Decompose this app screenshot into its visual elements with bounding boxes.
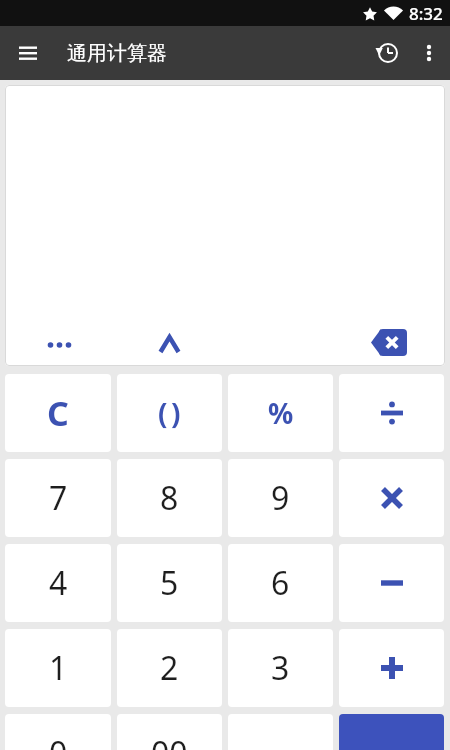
button[interactable]: 3 [228, 629, 333, 707]
button[interactable] [374, 40, 400, 66]
staticText: % [268, 394, 294, 432]
button[interactable]: 4 [5, 544, 111, 622]
staticText: 通用计算器 [67, 41, 167, 66]
staticText: ) [171, 394, 181, 432]
button[interactable]: ( [117, 374, 222, 452]
staticText: 8 [160, 476, 179, 520]
staticText: C [47, 390, 69, 436]
button[interactable]: 7 [5, 459, 111, 537]
staticText: 3 [271, 646, 290, 690]
button[interactable] [421, 39, 437, 67]
button[interactable] [339, 374, 444, 452]
staticText: 00 [151, 731, 188, 750]
button[interactable]: 6 [228, 544, 333, 622]
button[interactable]: 0 [5, 714, 111, 750]
button[interactable] [41, 336, 79, 356]
staticText: 9 [271, 476, 290, 520]
button[interactable] [339, 459, 444, 537]
staticText: 8:32 [409, 2, 443, 25]
button[interactable]: C [5, 374, 111, 452]
staticText: 2 [160, 646, 179, 690]
button[interactable] [157, 335, 183, 355]
button[interactable] [339, 714, 444, 750]
staticText: ( [158, 394, 168, 432]
staticText: 1 [49, 646, 68, 690]
button[interactable] [371, 329, 407, 356]
button[interactable]: 1 [5, 629, 111, 707]
staticText: 5 [160, 561, 179, 605]
button[interactable]: % [228, 374, 333, 452]
button[interactable]: 8 [117, 459, 222, 537]
button[interactable] [339, 544, 444, 622]
button[interactable]: 00 [117, 714, 222, 750]
staticText: 7 [49, 476, 68, 520]
button[interactable] [339, 629, 444, 707]
staticText: 4 [49, 561, 68, 605]
staticText: 0 [49, 731, 68, 750]
button[interactable] [19, 44, 37, 62]
button[interactable]: 2 [117, 629, 222, 707]
button[interactable]: 9 [228, 459, 333, 537]
staticText: 6 [271, 561, 290, 605]
button[interactable]: 5 [117, 544, 222, 622]
